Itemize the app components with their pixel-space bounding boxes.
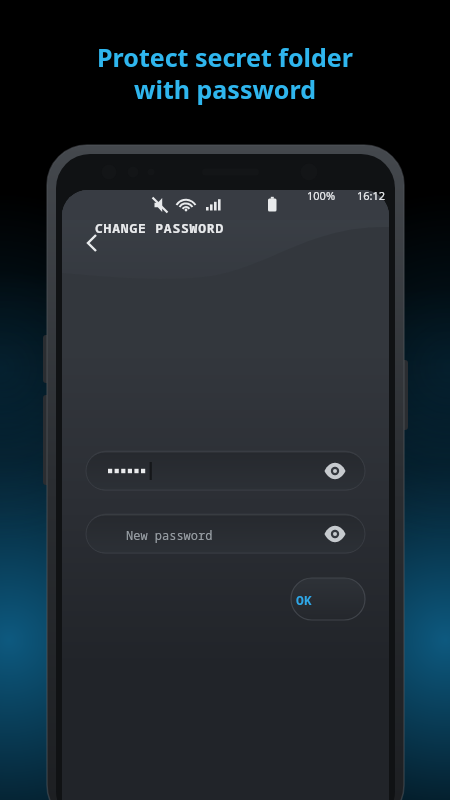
button[interactable]: Show current password xyxy=(298,458,334,484)
button[interactable]: Back xyxy=(67,207,101,241)
button[interactable]: Show new password xyxy=(298,521,334,547)
staticText: 100% xyxy=(307,188,336,203)
staticText: CHANGE PASSWORD xyxy=(95,219,225,237)
staticText: Protect secret folder with password xyxy=(0,40,450,800)
button[interactable]: Current password field xyxy=(108,452,342,490)
staticText: 16:12 xyxy=(357,188,386,203)
staticText: OK xyxy=(296,591,313,609)
staticText: New password xyxy=(126,527,213,543)
button[interactable]: New password field xyxy=(108,515,342,553)
button[interactable] xyxy=(268,578,342,620)
